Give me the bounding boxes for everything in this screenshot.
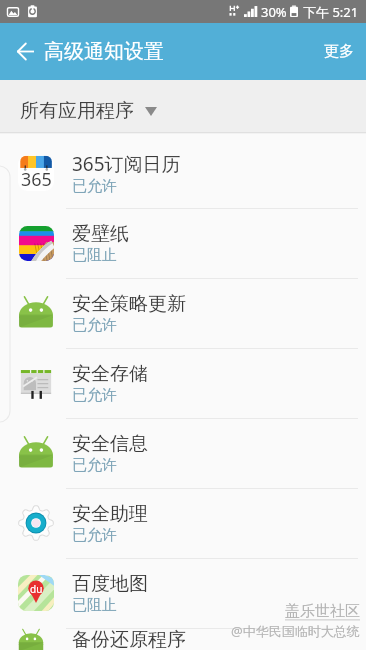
staticText: 盖乐世社区 bbox=[285, 602, 360, 621]
staticText: 安全存储 bbox=[72, 362, 148, 386]
button[interactable]: 安全信息 bbox=[0, 418, 366, 488]
staticText: 已阻止 bbox=[72, 246, 117, 265]
button[interactable]: 备份还原程序 bbox=[0, 628, 366, 650]
staticText: @中华民国临时大总统 bbox=[231, 622, 360, 640]
button[interactable]: 安全助理 bbox=[0, 488, 366, 558]
staticText: 下午 5:21 bbox=[303, 3, 359, 21]
staticText: 备份还原程序 bbox=[72, 628, 186, 650]
staticText: 已允许 bbox=[72, 456, 117, 475]
button[interactable]: 所有应用程序 bbox=[0, 80, 366, 132]
staticText: du bbox=[30, 582, 43, 596]
button[interactable]: du bbox=[0, 558, 366, 628]
button[interactable]: Back bbox=[0, 23, 44, 80]
staticText: 所有应用程序 bbox=[20, 99, 134, 123]
staticText: 安全策略更新 bbox=[72, 292, 186, 316]
staticText: 高级通知设置 bbox=[44, 39, 164, 64]
staticText: 安全助理 bbox=[72, 502, 148, 526]
staticText: 更多 bbox=[324, 42, 354, 61]
staticText: 30% bbox=[261, 3, 287, 21]
button[interactable]: 安全存储 bbox=[0, 348, 366, 418]
staticText: 已允许 bbox=[72, 177, 117, 196]
staticText: 爱壁纸 bbox=[72, 222, 129, 246]
button[interactable]: 365 bbox=[0, 138, 366, 208]
staticText: 已允许 bbox=[72, 386, 117, 405]
staticText: 365订阅日历 bbox=[72, 151, 181, 177]
staticText: 365 bbox=[21, 167, 52, 192]
button[interactable]: 爱壁纸 bbox=[0, 208, 366, 278]
staticText: 已允许 bbox=[72, 316, 117, 335]
button[interactable]: 安全策略更新 bbox=[0, 278, 366, 348]
staticText: 已允许 bbox=[72, 526, 117, 545]
button[interactable]: 更多 bbox=[310, 23, 366, 80]
staticText: 安全信息 bbox=[72, 432, 148, 456]
staticText: 百度地图 bbox=[72, 572, 148, 596]
staticText: 已阻止 bbox=[72, 596, 117, 615]
